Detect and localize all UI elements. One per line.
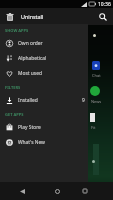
staticText: FILTERS: [5, 85, 21, 90]
staticText: Uninstall: [21, 13, 44, 20]
staticText: Installed: [18, 97, 38, 104]
button[interactable]: Home: [50, 184, 64, 198]
staticText: 9: [82, 97, 85, 104]
staticText: 10:36: [98, 1, 111, 8]
staticText: Fit: [91, 125, 96, 130]
button[interactable]: Uninstall: [0, 8, 20, 25]
staticText: Play Store: [18, 124, 41, 131]
staticText: Own order: [18, 40, 43, 47]
button[interactable]: Alphabetical: [0, 51, 88, 66]
staticText: What's New: [18, 139, 45, 146]
staticText: News: [91, 99, 102, 104]
button[interactable]: Back: [15, 184, 29, 198]
staticText: Alphabetical: [18, 55, 47, 62]
staticText: SHOW APPS: [5, 28, 29, 33]
button[interactable]: Most used: [0, 66, 88, 81]
button[interactable]: Search: [93, 8, 113, 25]
button[interactable]: What's New: [0, 135, 88, 150]
button[interactable]: Installed: [0, 93, 88, 108]
button[interactable]: Play Store: [0, 120, 88, 135]
button[interactable]: Own order: [0, 36, 88, 51]
staticText: Chat: [92, 73, 101, 78]
staticText: Most used: [18, 70, 42, 77]
button[interactable]: Recents: [78, 184, 92, 198]
staticText: GET APPS: [5, 112, 24, 117]
